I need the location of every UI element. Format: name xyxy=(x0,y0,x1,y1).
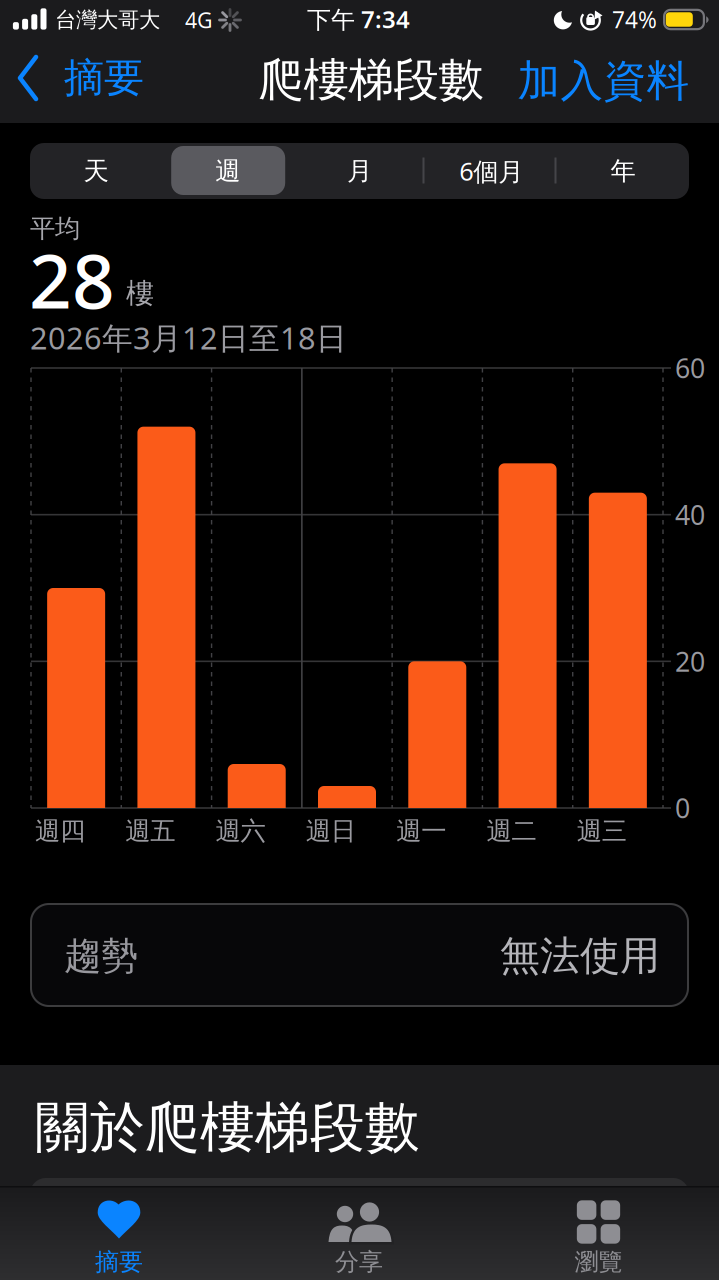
staticText: 週 xyxy=(215,155,240,186)
staticText: 瀏覽 xyxy=(574,1247,622,1277)
staticText: 2026年3月12日至18日 xyxy=(30,317,347,358)
staticText: 分享 xyxy=(335,1247,383,1277)
staticText: 週一 xyxy=(396,815,446,846)
staticText: 週日 xyxy=(306,815,356,846)
staticText: 4G xyxy=(185,6,213,34)
button[interactable]: 瀏覽 xyxy=(508,1186,688,1280)
staticText: 74% xyxy=(612,4,657,34)
staticText: 0 xyxy=(675,790,690,826)
staticText: 週二 xyxy=(486,815,536,846)
button[interactable]: 6個月 xyxy=(425,143,557,199)
staticText: 週五 xyxy=(125,815,175,846)
button[interactable]: 加入資料 xyxy=(509,39,709,123)
button[interactable]: 週 xyxy=(162,143,294,199)
button[interactable]: 月 xyxy=(294,143,425,199)
staticText: 平均 xyxy=(30,213,80,244)
staticText: 摘要 xyxy=(95,1247,143,1277)
staticText: 天 xyxy=(83,155,108,186)
staticText: 摘要 xyxy=(64,53,144,102)
button[interactable]: 返回摘要 xyxy=(0,39,160,123)
button[interactable]: 天 xyxy=(30,143,162,199)
staticText: 台灣大哥大 xyxy=(55,7,160,33)
button[interactable]: 分享 xyxy=(269,1186,449,1280)
staticText: 月 xyxy=(347,155,372,186)
staticText: 20 xyxy=(675,644,705,679)
staticText: 年 xyxy=(611,155,636,186)
staticText: 週三 xyxy=(577,815,627,846)
staticText: 趨勢 xyxy=(64,933,138,979)
staticText: 關於爬樓梯段數 xyxy=(35,1094,420,1161)
staticText: 樓 xyxy=(126,276,154,311)
staticText: 60 xyxy=(675,350,705,386)
staticText: 28 xyxy=(29,230,115,329)
staticText: 40 xyxy=(675,497,705,532)
staticText: 下午 7:34 xyxy=(307,3,410,35)
button[interactable]: 年 xyxy=(557,143,689,199)
staticText: 週四 xyxy=(35,815,85,846)
staticText: 無法使用 xyxy=(500,931,660,980)
staticText: 週六 xyxy=(216,815,266,846)
button[interactable]: 摘要 xyxy=(29,1186,209,1280)
staticText: 加入資料 xyxy=(517,55,689,107)
staticText: 6個月 xyxy=(459,154,523,188)
staticText: 爬樓梯段數 xyxy=(258,52,483,108)
